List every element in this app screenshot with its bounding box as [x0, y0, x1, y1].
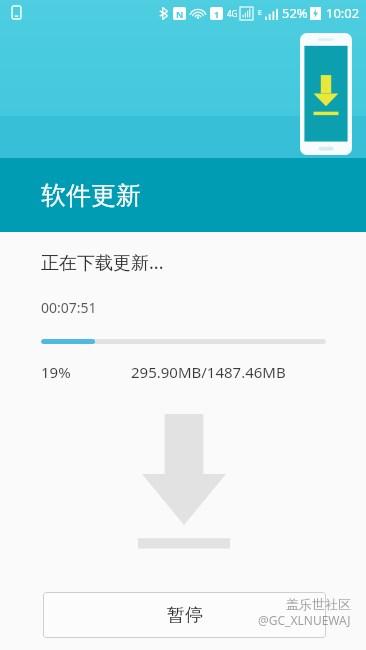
staticText: 19% — [41, 362, 71, 382]
staticText: 10:02 — [326, 4, 360, 22]
staticText: @GC_XLNUEWAJ — [258, 612, 351, 628]
staticText: 295.90MB/1487.46MB — [131, 362, 286, 382]
staticText: 4G — [227, 8, 238, 19]
staticText: N — [176, 8, 184, 20]
staticText: 52% — [282, 4, 308, 22]
staticText: E — [258, 8, 262, 18]
staticText: 暂停 — [167, 604, 203, 627]
staticText: 正在下载更新... — [41, 250, 164, 275]
button[interactable]: 暂停 — [43, 592, 326, 638]
staticText: 软件更新 — [41, 180, 141, 211]
staticText: 盖乐世社区 — [286, 596, 351, 612]
staticText: 00:07:51 — [41, 298, 97, 317]
staticText: 1 — [214, 8, 220, 20]
